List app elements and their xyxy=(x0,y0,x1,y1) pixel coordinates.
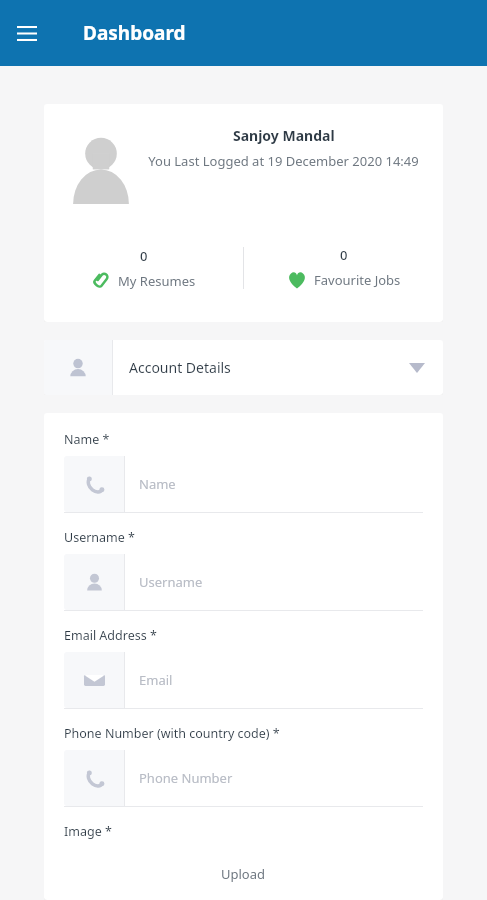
button[interactable]: Open navigation menu xyxy=(10,16,44,50)
staticText: 0 xyxy=(340,246,348,264)
staticText: Name * xyxy=(64,431,110,448)
staticText: Email xyxy=(139,671,173,689)
button[interactable]: 0 xyxy=(244,246,443,290)
staticText: Phone Number (with country code) * xyxy=(64,725,280,742)
staticText: Name xyxy=(139,475,176,493)
button[interactable]: Upload xyxy=(64,848,423,900)
staticText: Phone Number xyxy=(139,769,233,787)
staticText: Favourite Jobs xyxy=(314,271,401,289)
staticText: Upload xyxy=(221,865,266,883)
staticText: You Last Logged at 19 December 2020 14:4… xyxy=(148,152,419,170)
staticText: Email Address * xyxy=(64,627,157,644)
staticText: Dashboard xyxy=(83,20,186,46)
staticText: 0 xyxy=(140,247,148,265)
button[interactable]: Username xyxy=(64,554,423,610)
button[interactable]: Email xyxy=(64,652,423,708)
staticText: Username xyxy=(139,573,203,591)
button[interactable]: 0 xyxy=(44,247,243,290)
staticText: My Resumes xyxy=(118,272,196,290)
staticText: Sanjoy Mandal xyxy=(233,126,335,145)
staticText: Image * xyxy=(64,823,112,840)
staticText: Account Details xyxy=(129,358,409,377)
button[interactable]: Phone Number xyxy=(64,750,423,806)
staticText: Username * xyxy=(64,529,135,546)
button[interactable]: Account Details xyxy=(44,340,443,395)
button[interactable]: Name xyxy=(64,456,423,512)
